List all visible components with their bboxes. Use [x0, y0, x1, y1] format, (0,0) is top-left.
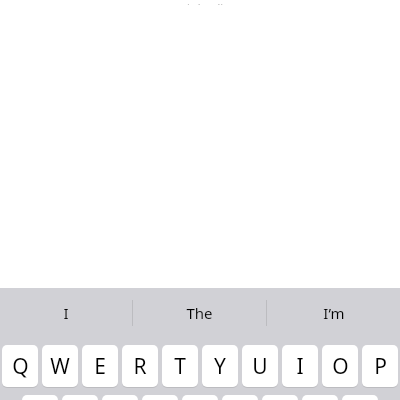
- button[interactable]: U: [240, 345, 280, 389]
- button[interactable]: K: [300, 395, 340, 400]
- button[interactable]: S: [60, 395, 100, 400]
- button[interactable]: F: [140, 395, 180, 400]
- button[interactable]: W: [40, 345, 80, 389]
- button[interactable]: L: [340, 395, 380, 400]
- staticText: O: [332, 352, 349, 381]
- button[interactable]: G: [180, 395, 220, 400]
- staticText: app is loading: [164, 0, 237, 5]
- staticText: T: [174, 352, 186, 381]
- staticText: R: [133, 352, 147, 381]
- button[interactable]: D: [100, 395, 140, 400]
- staticText: I: [296, 352, 304, 381]
- button[interactable]: J: [260, 395, 300, 400]
- button[interactable]: R: [120, 345, 160, 389]
- button[interactable]: T: [160, 345, 200, 389]
- staticText: P: [374, 352, 387, 381]
- staticText: W: [50, 352, 70, 381]
- button[interactable]: A: [20, 395, 60, 400]
- staticText: U: [252, 352, 268, 381]
- button[interactable]: P: [360, 345, 400, 389]
- button[interactable]: The: [133, 288, 266, 338]
- button[interactable]: Y: [200, 345, 240, 389]
- button[interactable]: O: [320, 345, 360, 389]
- button[interactable]: H: [220, 395, 260, 400]
- staticText: Y: [214, 352, 226, 381]
- button[interactable]: I: [0, 288, 132, 338]
- staticText: I’m: [323, 303, 345, 323]
- staticText: I: [63, 303, 69, 323]
- button[interactable]: I: [280, 345, 320, 389]
- staticText: The: [186, 303, 213, 323]
- button[interactable]: E: [80, 345, 120, 389]
- staticText: Q: [12, 352, 29, 381]
- staticText: E: [94, 352, 106, 381]
- button[interactable]: Q: [0, 345, 40, 389]
- button[interactable]: I’m: [267, 288, 400, 338]
